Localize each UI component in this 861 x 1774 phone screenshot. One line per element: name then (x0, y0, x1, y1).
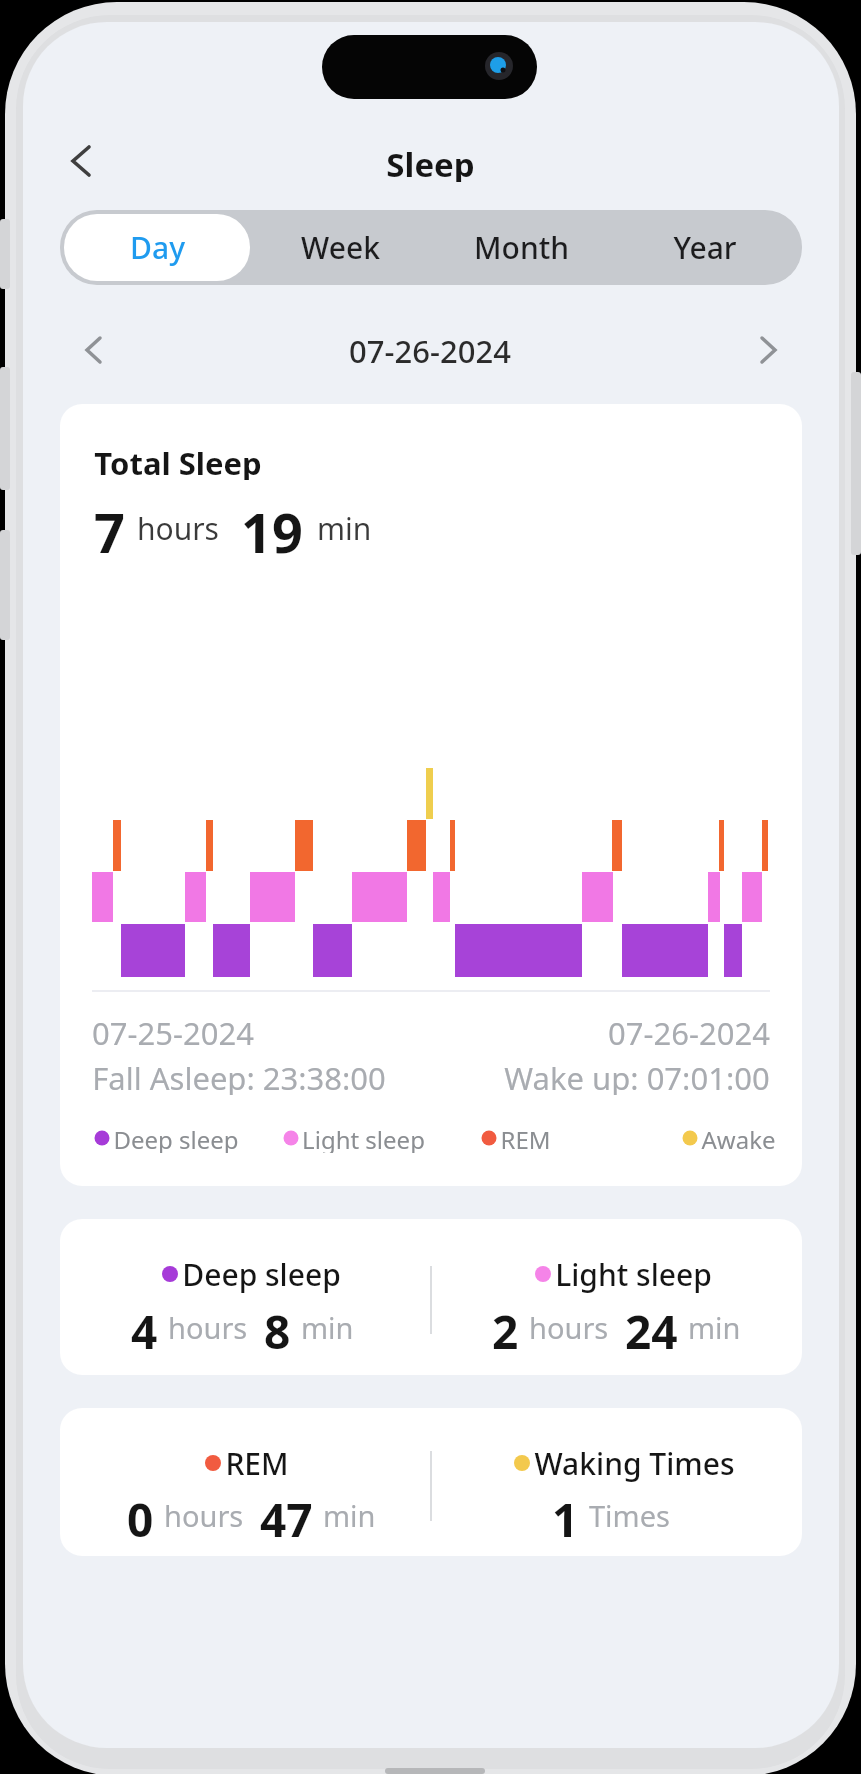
staticText: 07-26-2024 (608, 1012, 770, 1050)
staticText: 24 (625, 1300, 678, 1354)
staticText: REM (225, 1443, 289, 1483)
staticText: 4 (131, 1300, 158, 1354)
staticText: Fall Asleep: 23:38:00 (92, 1057, 386, 1095)
staticText: 19 (241, 495, 303, 561)
button[interactable] (742, 324, 794, 376)
staticText: Day (130, 227, 185, 268)
staticText: 47 (260, 1488, 313, 1542)
staticText: Light sleep (302, 1123, 425, 1153)
staticText: Week (301, 227, 380, 268)
staticText: Year (673, 227, 737, 268)
staticText: min (323, 1496, 376, 1535)
staticText: 8 (264, 1300, 291, 1354)
staticText: 7 (94, 495, 125, 561)
staticText: 2 (492, 1300, 519, 1354)
button[interactable] (60, 1408, 802, 1556)
staticText: REM (500, 1123, 551, 1153)
staticText: hours (164, 1496, 244, 1535)
staticText: Awake (701, 1123, 776, 1153)
button[interactable] (70, 324, 122, 376)
staticText: Month (474, 227, 569, 268)
button[interactable] (250, 214, 430, 281)
staticText: min (317, 508, 372, 549)
staticText: Sleep (386, 142, 475, 182)
staticText: Deep sleep (182, 1254, 341, 1294)
staticText: Times (589, 1496, 670, 1535)
staticText: hours (529, 1308, 609, 1347)
staticText: Light sleep (555, 1254, 712, 1294)
button[interactable] (64, 214, 250, 281)
staticText: hours (137, 508, 219, 549)
staticText: 0 (127, 1488, 154, 1542)
staticText: Waking Times (534, 1443, 735, 1483)
staticText: min (301, 1308, 354, 1347)
button[interactable] (430, 214, 612, 281)
staticText: 1 (552, 1488, 579, 1542)
staticText: Deep sleep (113, 1123, 239, 1153)
button[interactable] (612, 214, 798, 281)
staticText: hours (168, 1308, 248, 1347)
staticText: Total Sleep (94, 442, 262, 480)
button[interactable] (60, 1219, 802, 1375)
button[interactable] (56, 135, 108, 187)
staticText: 07-26-2024 (349, 330, 511, 370)
staticText: 07-25-2024 (92, 1012, 254, 1050)
staticText: min (688, 1308, 741, 1347)
staticText: Wake up: 07:01:00 (504, 1057, 770, 1095)
